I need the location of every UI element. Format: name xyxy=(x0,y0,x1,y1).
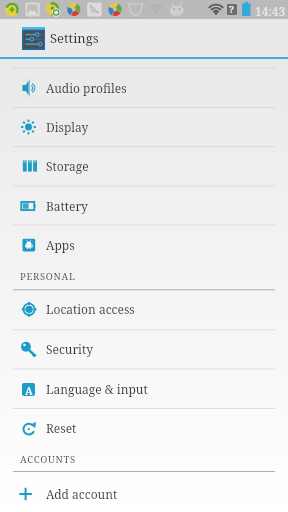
button[interactable]: Audio profiles xyxy=(0,68,288,107)
staticText: Language & input xyxy=(46,381,148,397)
staticText: Add account xyxy=(46,486,118,502)
staticText: A xyxy=(25,383,33,396)
staticText: Apps xyxy=(46,237,75,253)
button[interactable]: Battery xyxy=(0,186,288,225)
button[interactable]: Add account xyxy=(0,474,288,512)
button[interactable]: Display xyxy=(0,107,288,146)
staticText: Security xyxy=(46,341,93,357)
staticText: ACCOUNTS xyxy=(20,453,76,466)
button[interactable]: Settings xyxy=(0,19,288,57)
button[interactable]: Reset xyxy=(0,408,288,447)
staticText: Battery xyxy=(46,198,88,214)
staticText: Reset xyxy=(46,420,77,436)
staticText: Location access xyxy=(46,301,135,317)
staticText: PERSONAL xyxy=(20,270,76,283)
staticText: Audio profiles xyxy=(46,80,127,96)
button[interactable]: Location access xyxy=(0,289,288,328)
button[interactable]: Apps xyxy=(0,225,288,264)
button[interactable]: A xyxy=(0,369,288,408)
staticText: Storage xyxy=(46,158,89,174)
staticText: 14:43 xyxy=(255,3,286,19)
staticText: ? xyxy=(229,3,234,15)
button[interactable]: Storage xyxy=(0,146,288,185)
staticText: Display xyxy=(46,119,89,135)
button[interactable]: Security xyxy=(0,329,288,368)
staticText: Settings xyxy=(50,29,99,47)
